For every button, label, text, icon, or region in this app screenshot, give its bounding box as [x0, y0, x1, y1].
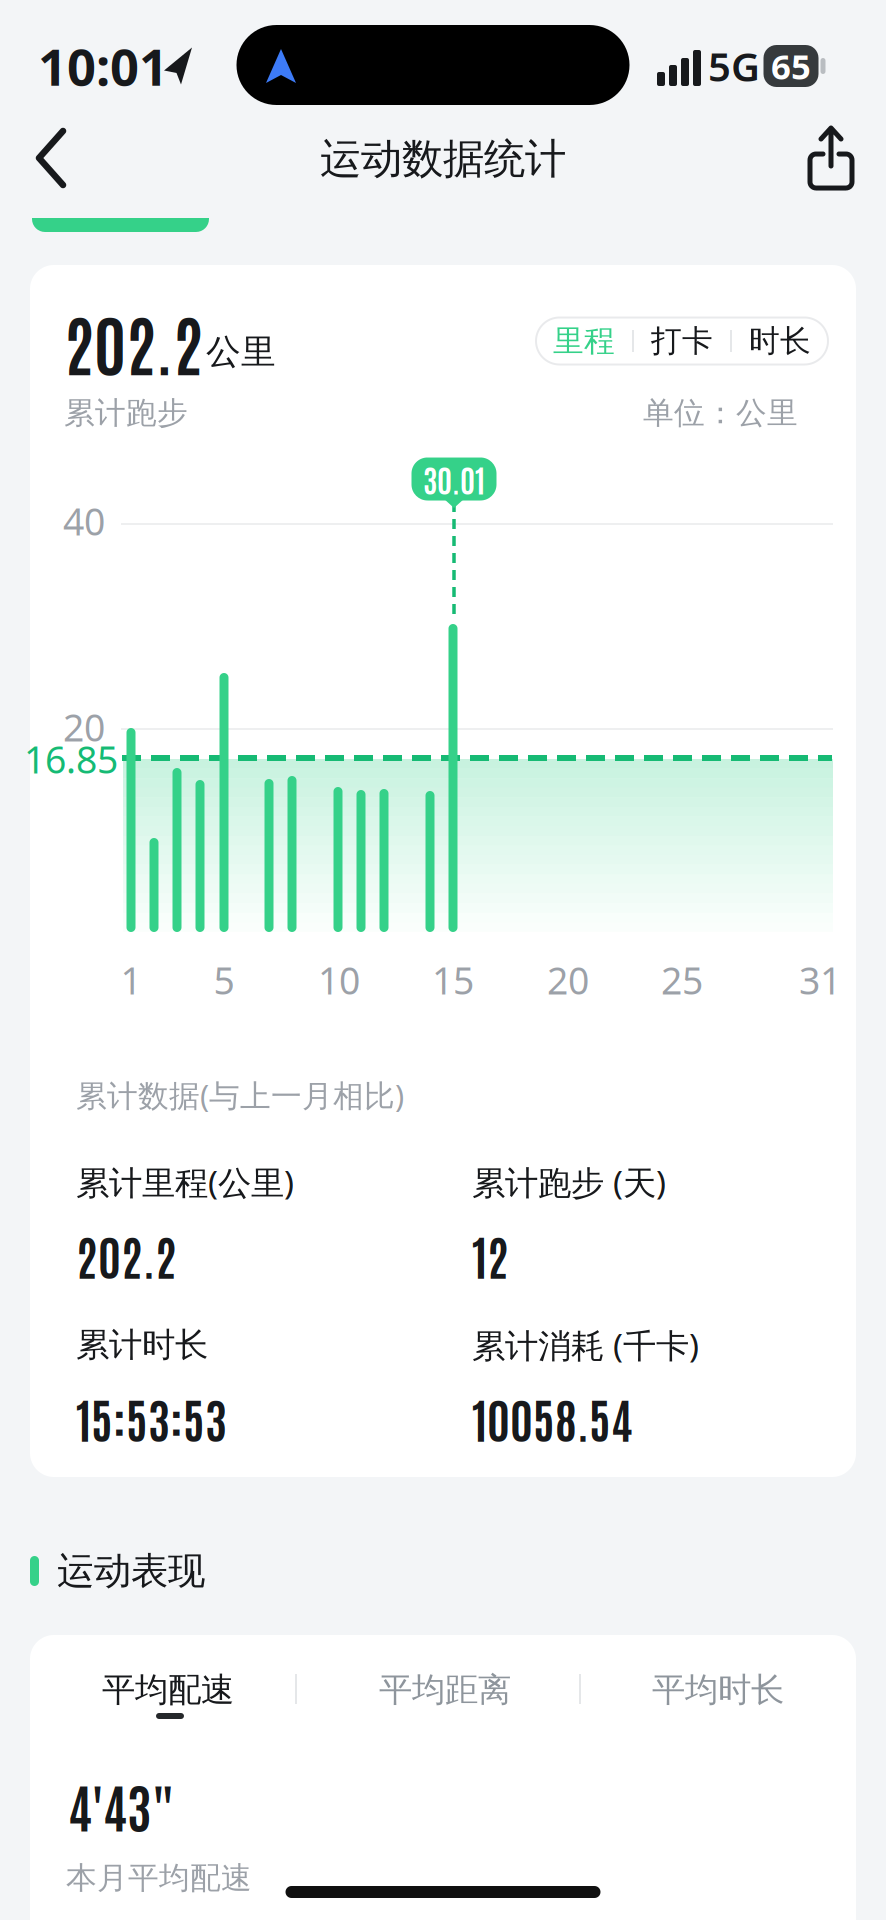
staticText: 平均配速 [102, 1669, 234, 1710]
staticText: 12 [472, 1225, 509, 1285]
staticText: 运动数据统计 [320, 134, 566, 184]
staticText: 5 [213, 955, 234, 1005]
staticText: 累计消耗 (千卡) [472, 1323, 699, 1367]
staticText: 1 [120, 955, 141, 1005]
staticText: 10:01 [38, 32, 168, 100]
staticText: 单位：公里 [643, 394, 798, 432]
button[interactable]: 平均距离 [345, 1669, 545, 1710]
button[interactable] [32, 218, 209, 232]
staticText: 本月平均配速 [66, 1859, 252, 1897]
staticText: 16.85 [24, 734, 118, 784]
button[interactable] [37, 131, 67, 187]
staticText: 202.2 [76, 1225, 177, 1285]
staticText: 平均距离 [379, 1669, 511, 1710]
button[interactable]: 平均时长 [618, 1669, 818, 1710]
staticText: 4'43" [68, 1771, 175, 1839]
staticText: 65 [771, 43, 811, 89]
staticText: 平均时长 [652, 1669, 784, 1710]
button[interactable]: 里程 [536, 322, 632, 360]
staticText: 10 [318, 955, 360, 1005]
staticText: 15 [432, 955, 474, 1005]
staticText: 里程 [553, 322, 615, 360]
staticText: 202.2 [64, 300, 203, 384]
staticText: 30.01 [423, 459, 485, 499]
staticText: 31 [799, 955, 841, 1005]
staticText: 累计跑步 (天) [472, 1160, 666, 1204]
staticText: 时长 [749, 322, 811, 360]
button[interactable]: 时长 [732, 322, 828, 360]
staticText: 累计里程(公里) [76, 1160, 294, 1204]
staticText: 累计数据(与上一月相比) [76, 1075, 404, 1115]
staticText: 15:53:53 [76, 1388, 227, 1448]
staticText: 运动表现 [57, 1548, 205, 1594]
staticText: 累计跑步 [64, 394, 188, 432]
staticText: 20 [63, 702, 105, 752]
staticText: 25 [661, 955, 703, 1005]
button[interactable]: 打卡 [634, 322, 730, 360]
staticText: 40 [63, 496, 105, 546]
button[interactable]: 平均配速 [68, 1669, 268, 1710]
staticText: 10058.54 [472, 1388, 633, 1448]
staticText: 5G [708, 39, 760, 92]
staticText: 打卡 [651, 322, 713, 360]
staticText: 20 [547, 955, 589, 1005]
staticText: 公里 [206, 331, 276, 373]
staticText: 累计时长 [76, 1324, 208, 1365]
button[interactable] [810, 126, 854, 190]
